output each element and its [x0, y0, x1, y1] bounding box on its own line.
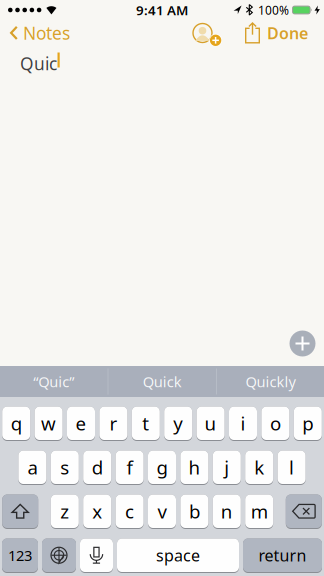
staticText: Quic: [20, 52, 57, 75]
button[interactable]: q: [2, 406, 30, 441]
button[interactable]: k: [245, 450, 273, 485]
button[interactable]: u: [197, 406, 225, 441]
staticText: x: [92, 499, 102, 524]
button[interactable]: return: [243, 538, 322, 573]
button[interactable]: i: [229, 406, 257, 441]
button[interactable]: Add people: [188, 21, 217, 45]
button[interactable]: s: [51, 450, 79, 485]
button[interactable]: o: [261, 406, 289, 441]
button[interactable]: m: [245, 494, 273, 529]
button[interactable]: Delete: [286, 494, 322, 529]
staticText: f: [127, 455, 133, 480]
button[interactable]: space: [117, 538, 239, 573]
button[interactable]: p: [294, 406, 322, 441]
button[interactable]: v: [148, 494, 176, 529]
staticText: 9:41 AM: [136, 1, 188, 19]
staticText: return: [258, 545, 306, 566]
staticText: q: [11, 411, 22, 436]
staticText: Done: [267, 22, 308, 44]
staticText: t: [142, 411, 149, 436]
button[interactable]: n: [213, 494, 241, 529]
button[interactable]: Add attachment: [289, 330, 315, 356]
staticText: v: [157, 499, 166, 524]
button[interactable]: r: [99, 406, 127, 441]
staticText: i: [240, 411, 245, 436]
staticText: z: [60, 499, 69, 524]
staticText: 100%: [258, 2, 289, 18]
staticText: p: [302, 411, 313, 436]
button[interactable]: Quick: [108, 366, 216, 397]
button[interactable]: Notes: [10, 21, 70, 44]
button[interactable]: b: [180, 494, 208, 529]
staticText: l: [289, 455, 294, 480]
staticText: j: [224, 455, 229, 480]
button[interactable]: Done: [267, 22, 308, 44]
button[interactable]: a: [18, 450, 46, 485]
staticText: “Quic”: [33, 372, 74, 391]
staticText: h: [188, 455, 200, 480]
staticText: Quickly: [245, 372, 295, 391]
button[interactable]: g: [148, 450, 176, 485]
button[interactable]: c: [116, 494, 144, 529]
staticText: k: [254, 455, 264, 480]
staticText: Notes: [23, 21, 70, 44]
button[interactable]: w: [35, 406, 63, 441]
staticText: space: [156, 545, 200, 566]
button[interactable]: Next keyboard: [42, 538, 76, 573]
staticText: c: [125, 499, 134, 524]
button[interactable]: “Quic”: [0, 366, 107, 397]
button[interactable]: l: [278, 450, 306, 485]
staticText: r: [109, 411, 117, 436]
button[interactable]: e: [67, 406, 95, 441]
staticText: e: [75, 411, 86, 436]
staticText: b: [189, 499, 200, 524]
staticText: u: [205, 411, 217, 436]
staticText: a: [27, 455, 37, 480]
button[interactable]: z: [51, 494, 79, 529]
button[interactable]: Share: [245, 22, 260, 43]
staticText: n: [221, 499, 233, 524]
staticText: w: [41, 411, 56, 436]
button[interactable]: Dictate: [80, 538, 113, 573]
staticText: 123: [8, 545, 32, 565]
button[interactable]: h: [180, 450, 208, 485]
button[interactable]: d: [83, 450, 111, 485]
button[interactable]: Quickly: [217, 366, 324, 397]
button[interactable]: 123: [2, 538, 38, 573]
staticText: s: [60, 455, 69, 480]
staticText: Quick: [143, 372, 182, 391]
staticText: m: [251, 499, 268, 524]
staticText: y: [173, 411, 183, 436]
button[interactable]: y: [164, 406, 192, 441]
button[interactable]: Shift: [2, 494, 38, 529]
button[interactable]: t: [132, 406, 160, 441]
staticText: d: [92, 455, 103, 480]
button[interactable]: f: [116, 450, 144, 485]
button[interactable]: j: [213, 450, 241, 485]
button[interactable]: x: [83, 494, 111, 529]
staticText: o: [270, 411, 281, 436]
staticText: g: [156, 455, 167, 480]
